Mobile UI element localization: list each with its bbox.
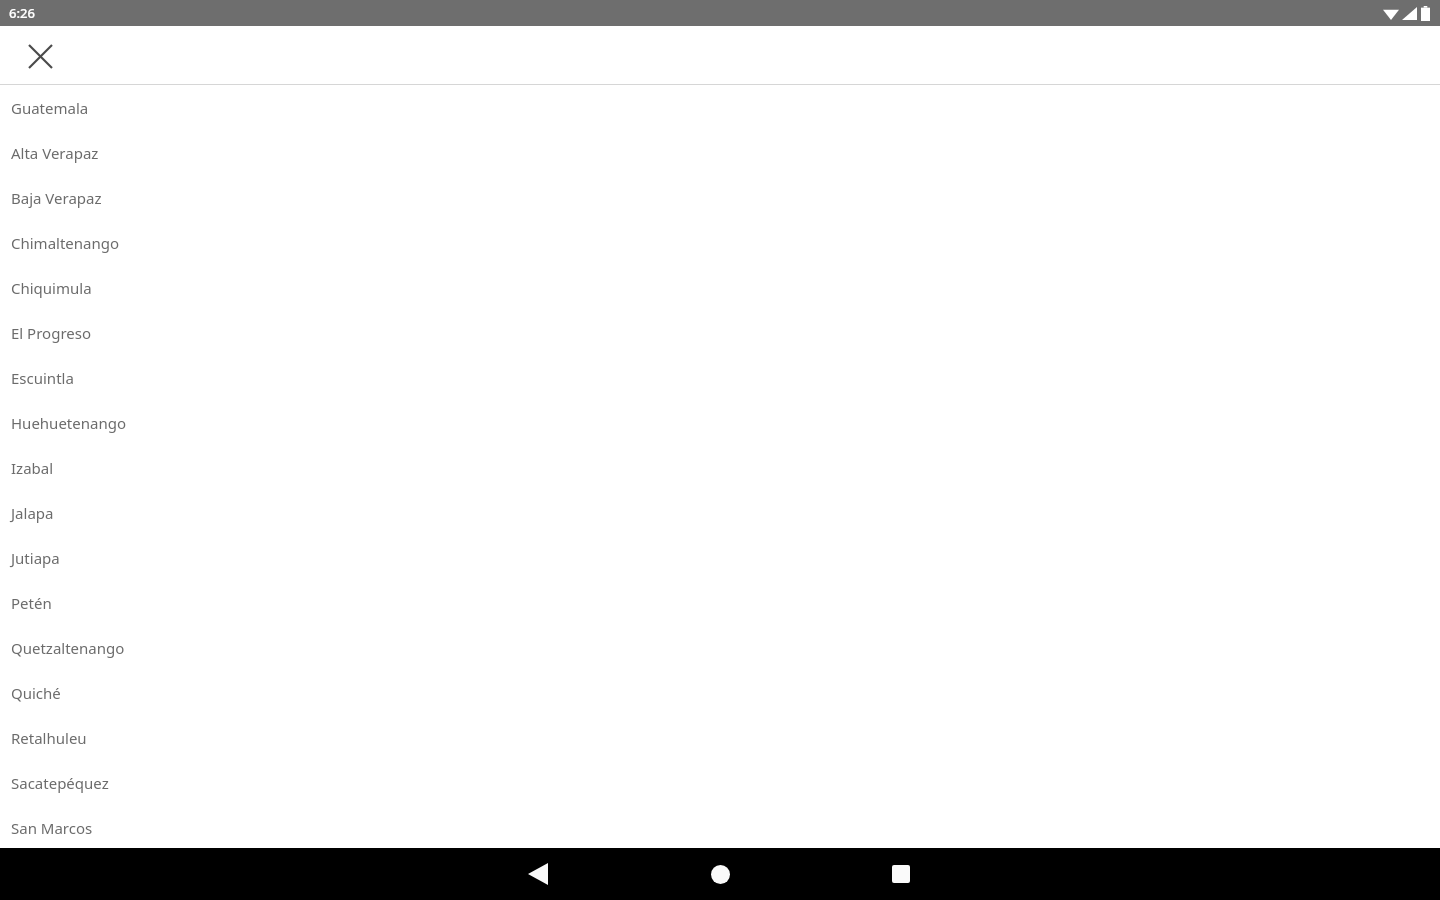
button[interactable]: Home <box>696 850 744 898</box>
button[interactable]: Jutiapa <box>0 535 1440 580</box>
staticText: Jutiapa <box>11 548 60 568</box>
staticText: Huehuetenango <box>11 413 126 433</box>
button[interactable]: San Marcos <box>0 805 1440 850</box>
staticText: Retalhuleu <box>11 728 87 748</box>
button[interactable]: Retalhuleu <box>0 715 1440 760</box>
button[interactable]: Recent apps <box>877 850 925 898</box>
staticText: Chimaltenango <box>11 233 120 253</box>
button[interactable]: Izabal <box>0 445 1440 490</box>
button[interactable]: Quetzaltenango <box>0 625 1440 670</box>
button[interactable]: Back <box>514 850 562 898</box>
staticText: Izabal <box>11 458 54 478</box>
staticText: Quetzaltenango <box>11 638 125 658</box>
staticText: Quiché <box>11 683 61 703</box>
staticText: Escuintla <box>11 368 74 388</box>
button[interactable]: Petén <box>0 580 1440 625</box>
staticText: Guatemala <box>11 98 89 118</box>
button[interactable]: Chiquimula <box>0 265 1440 310</box>
staticText: El Progreso <box>11 323 91 343</box>
staticText: Petén <box>11 593 52 613</box>
button[interactable]: Huehuetenango <box>0 400 1440 445</box>
button[interactable]: El Progreso <box>0 310 1440 355</box>
button[interactable]: Quiché <box>0 670 1440 715</box>
button[interactable]: Chimaltenango <box>0 220 1440 265</box>
button[interactable]: Alta Verapaz <box>0 130 1440 175</box>
button[interactable]: Santa Rosa <box>0 850 1440 895</box>
staticText: San Marcos <box>11 818 93 838</box>
button[interactable]: Close <box>16 32 64 80</box>
staticText: Chiquimula <box>11 278 92 298</box>
staticText: Baja Verapaz <box>11 188 102 208</box>
button[interactable]: Guatemala <box>0 85 1440 130</box>
button[interactable]: Sacatepéquez <box>0 760 1440 805</box>
staticText: Alta Verapaz <box>11 143 99 163</box>
staticText: Jalapa <box>11 503 54 523</box>
button[interactable]: Baja Verapaz <box>0 175 1440 220</box>
staticText: Sacatepéquez <box>11 773 109 793</box>
button[interactable]: Escuintla <box>0 355 1440 400</box>
button[interactable]: Jalapa <box>0 490 1440 535</box>
staticText: 6:26 <box>9 4 35 22</box>
